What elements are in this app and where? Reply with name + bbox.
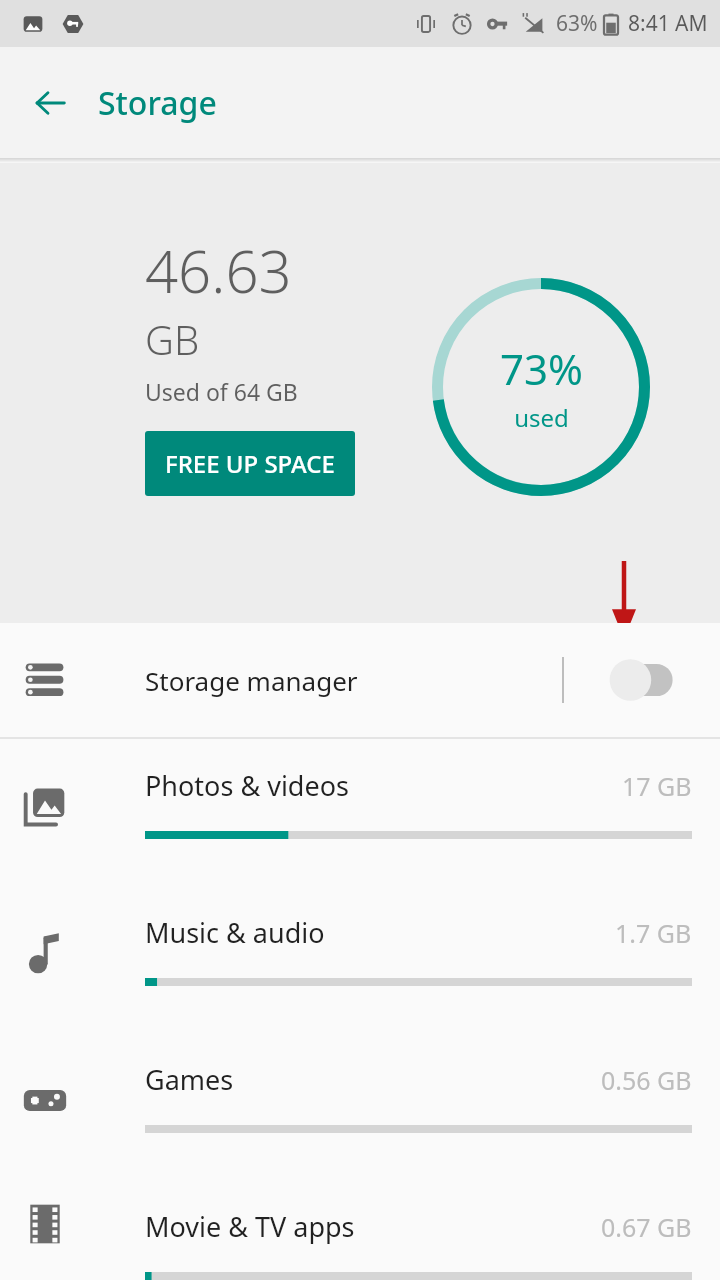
button[interactable]: Storage manager toggle	[606, 654, 680, 706]
staticText: 63%	[556, 9, 598, 38]
staticText: 8:41 AM	[628, 9, 708, 38]
staticText: Used of 64 GB	[145, 376, 298, 407]
button[interactable]: Back	[22, 75, 78, 131]
staticText: 46.63	[145, 231, 292, 310]
staticText: 73%	[500, 340, 583, 397]
button[interactable]: Movie & TV apps	[0, 1180, 720, 1280]
button[interactable]: Music & audio	[0, 886, 720, 1033]
staticText: Games	[145, 1061, 234, 1098]
staticText: Storage	[98, 81, 217, 125]
staticText: 1.7 GB	[615, 916, 692, 950]
button[interactable]: Storage manager	[0, 623, 720, 737]
staticText: Movie & TV apps	[145, 1208, 355, 1245]
staticText: used	[514, 401, 569, 434]
staticText: 0.67 GB	[601, 1210, 692, 1244]
staticText: FREE UP SPACE	[165, 447, 335, 480]
staticText: 17 GB	[622, 769, 692, 803]
staticText: Music & audio	[145, 914, 325, 951]
button[interactable]: Photos & videos	[0, 739, 720, 886]
staticText: Photos & videos	[145, 767, 349, 804]
staticText: 0.56 GB	[601, 1063, 692, 1097]
button[interactable]: FREE UP SPACE	[145, 431, 355, 496]
staticText: Storage manager	[145, 663, 358, 698]
staticText: GB	[145, 312, 200, 366]
button[interactable]: Games	[0, 1033, 720, 1180]
